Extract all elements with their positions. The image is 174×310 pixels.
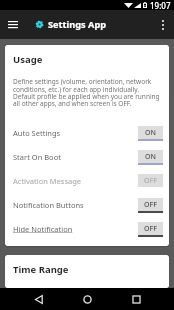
staticText: Notification Buttons (13, 200, 84, 210)
button[interactable]: Navigation menu (0, 10, 25, 39)
staticText: ON (145, 152, 156, 162)
staticText: OFF (144, 224, 157, 234)
staticText: Auto Settings (13, 128, 61, 138)
staticText: ON (145, 128, 156, 138)
staticText: Define settings (volume, orientation, ne… (13, 77, 160, 108)
staticText: Hide Notification (13, 224, 73, 234)
button[interactable]: Home (63, 288, 112, 310)
staticText: Start On Boot (13, 152, 61, 162)
button[interactable]: Back (14, 288, 63, 310)
button[interactable]: Start On Boot (13, 145, 163, 169)
button[interactable]: Hide Notification (13, 217, 163, 241)
staticText: Settings App (48, 18, 107, 31)
staticText: 19:07 (150, 0, 171, 10)
button[interactable]: Recent apps (112, 288, 161, 310)
staticText: Usage (13, 53, 43, 66)
button[interactable]: More options (152, 10, 174, 39)
staticText: Time Range (13, 263, 69, 276)
staticText: Activation Message (13, 176, 82, 186)
button[interactable]: Activation Message (13, 169, 163, 193)
staticText: OFF (144, 176, 157, 186)
button[interactable]: Auto Settings (13, 121, 163, 145)
button[interactable]: Notification Buttons (13, 193, 163, 217)
staticText: OFF (144, 200, 157, 210)
